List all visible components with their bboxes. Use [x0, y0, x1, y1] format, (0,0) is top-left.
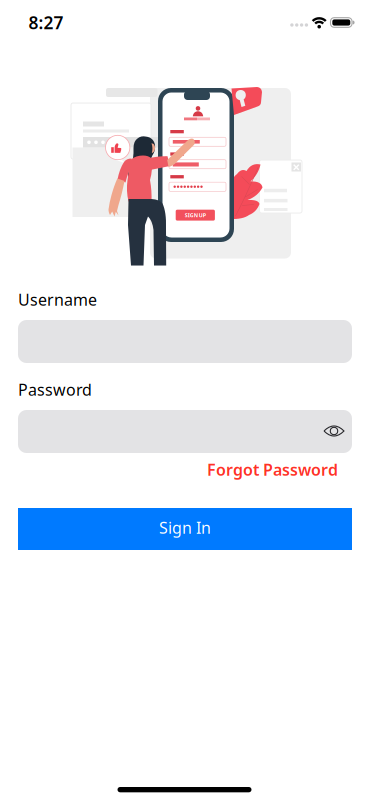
staticText: Username — [18, 289, 97, 310]
button[interactable]: Sign In — [18, 508, 352, 550]
button[interactable]: Forgot Password — [207, 459, 338, 480]
staticText: Sign In — [159, 517, 211, 538]
staticText: 8:27 — [28, 11, 63, 34]
button[interactable]: Password — [18, 410, 352, 453]
staticText: Forgot Password — [207, 459, 338, 480]
staticText: SIGN UP — [185, 212, 206, 219]
button[interactable]: Show password — [319, 416, 349, 446]
staticText: Password — [18, 379, 92, 400]
